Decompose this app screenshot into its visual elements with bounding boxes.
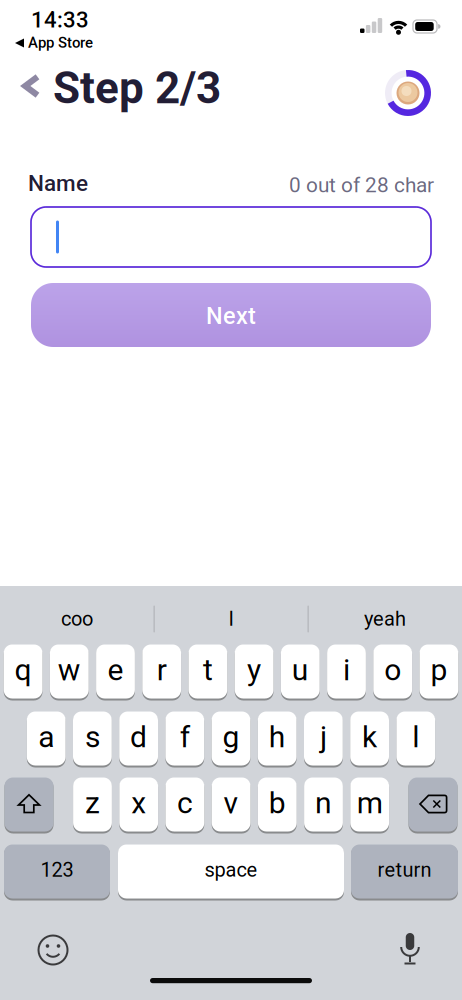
staticText: n	[315, 785, 332, 821]
staticText: x	[131, 785, 146, 821]
staticText: e	[107, 652, 123, 688]
button[interactable]: u	[281, 644, 320, 700]
staticText: i	[343, 652, 350, 688]
staticText: q	[15, 652, 32, 688]
staticText: f	[180, 719, 190, 755]
button[interactable]: yeah	[310, 597, 460, 641]
button[interactable]: coo	[2, 597, 152, 641]
button[interactable]: l	[396, 711, 435, 767]
staticText: 123	[40, 858, 73, 882]
staticText: l	[412, 719, 419, 755]
staticText: p	[430, 652, 447, 688]
staticText: g	[222, 719, 239, 755]
button[interactable]: i	[327, 644, 366, 700]
staticText: t	[203, 652, 213, 688]
button[interactable]: v	[212, 777, 250, 833]
button[interactable]: Delete	[408, 777, 457, 833]
button[interactable]: f	[165, 711, 204, 767]
staticText: v	[224, 785, 239, 821]
button[interactable]: b	[258, 777, 297, 833]
button[interactable]: h	[258, 711, 297, 767]
button[interactable]: m	[350, 777, 389, 833]
staticText: b	[269, 785, 286, 821]
staticText: 0 out of 28 char	[289, 173, 434, 197]
button[interactable]: n	[304, 777, 343, 833]
button[interactable]: s	[73, 711, 112, 767]
button[interactable]: t	[188, 644, 227, 700]
staticText: return	[377, 858, 431, 882]
button[interactable]: space	[118, 844, 344, 900]
button[interactable]: Shift	[4, 777, 53, 833]
staticText: Step 2/3	[53, 62, 221, 114]
button[interactable]: y	[235, 644, 273, 700]
staticText: App Store	[28, 34, 93, 51]
button[interactable]: return	[351, 844, 458, 900]
staticText: j	[320, 719, 327, 755]
staticText: space	[204, 858, 257, 882]
button[interactable]: Dictate	[399, 933, 462, 1000]
button[interactable]: Name text field	[31, 207, 431, 267]
button[interactable]: o	[373, 644, 412, 700]
button[interactable]: j	[304, 711, 343, 767]
staticText: Next	[206, 302, 256, 330]
button[interactable]: Emoji	[37, 934, 69, 966]
staticText: I	[228, 607, 233, 631]
staticText: k	[362, 719, 377, 755]
button[interactable]: k	[350, 711, 389, 767]
button[interactable]: x	[119, 777, 158, 833]
staticText: o	[384, 652, 401, 688]
button[interactable]: Back	[22, 74, 41, 99]
staticText: z	[85, 785, 100, 821]
button[interactable]: w	[50, 644, 89, 700]
staticText: coo	[61, 607, 93, 631]
button[interactable]: q	[4, 644, 42, 700]
staticText: a	[38, 719, 54, 755]
button[interactable]: a	[27, 711, 66, 767]
staticText: yeah	[364, 607, 406, 631]
staticText: d	[130, 719, 147, 755]
button[interactable]: g	[212, 711, 250, 767]
staticText: u	[292, 652, 309, 688]
button[interactable]: p	[419, 644, 458, 700]
button[interactable]: c	[165, 777, 204, 833]
staticText: m	[357, 785, 383, 821]
button[interactable]: Next	[31, 283, 431, 347]
button[interactable]: 123	[4, 844, 110, 900]
button[interactable]: e	[96, 644, 135, 700]
staticText: s	[85, 719, 100, 755]
button[interactable]: Back to App Store	[15, 34, 105, 52]
staticText: w	[58, 652, 81, 688]
staticText: h	[269, 719, 286, 755]
button[interactable]: d	[119, 711, 158, 767]
staticText: Name	[28, 170, 88, 196]
button[interactable]: r	[142, 644, 181, 700]
staticText: r	[157, 652, 167, 688]
staticText: 14:33	[31, 7, 89, 33]
staticText: y	[247, 652, 261, 688]
button[interactable]: z	[73, 777, 112, 833]
button[interactable]: I	[156, 597, 306, 641]
staticText: c	[177, 785, 193, 821]
